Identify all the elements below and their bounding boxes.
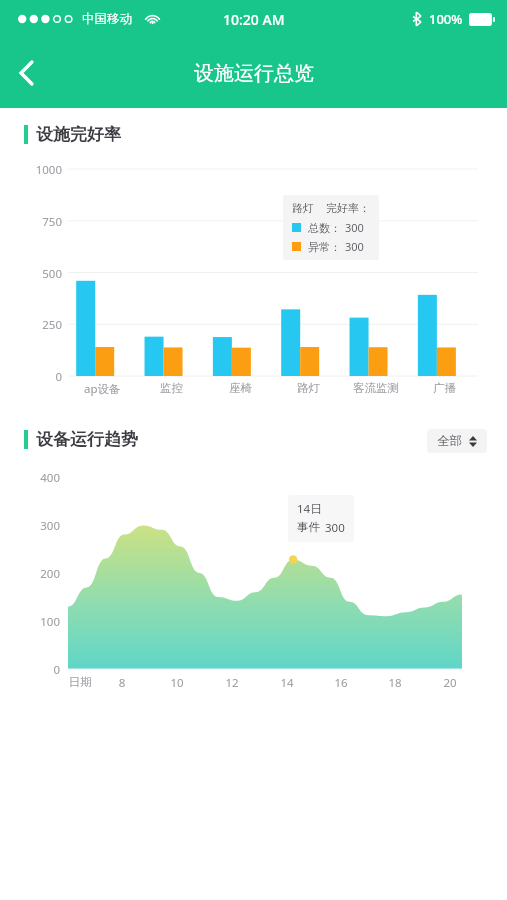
staticText: 8	[102, 675, 142, 691]
staticText: 10	[157, 675, 197, 691]
staticText: 300	[16, 518, 60, 534]
staticText: 200	[16, 566, 60, 582]
staticText: 全部	[437, 433, 462, 449]
staticText: 设施运行总览	[194, 61, 314, 86]
staticText: 设施完好率	[36, 124, 121, 145]
staticText: 总数：	[308, 221, 341, 235]
staticText: 300	[325, 520, 345, 536]
button[interactable]: Back	[0, 47, 52, 99]
staticText: 500	[18, 266, 62, 282]
staticText: 0	[16, 662, 60, 678]
staticText: 完好率：	[326, 201, 370, 215]
staticText: 300	[345, 220, 364, 235]
staticText: 18	[375, 675, 415, 691]
staticText: 300	[345, 239, 364, 254]
staticText: 路灯	[292, 201, 314, 215]
staticText: 设备运行趋势	[36, 429, 138, 450]
staticText: 100	[16, 614, 60, 630]
staticText: 客流监测	[353, 381, 399, 395]
staticText: 10:20 AM	[223, 10, 285, 29]
staticText: 1000	[18, 162, 62, 178]
staticText: 广播	[433, 381, 456, 395]
staticText: 750	[18, 214, 62, 230]
staticText: 异常：	[308, 240, 341, 254]
staticText: 日期	[60, 675, 100, 689]
staticText: ap设备	[84, 381, 121, 397]
staticText: 监控	[160, 381, 183, 395]
staticText: 12	[212, 675, 252, 691]
staticText: 路灯	[297, 381, 320, 395]
staticText: 20	[430, 675, 470, 691]
staticText: 250	[18, 317, 62, 333]
staticText: 14日	[297, 501, 322, 517]
staticText: 事件	[297, 520, 320, 534]
button[interactable]: 全部	[427, 429, 487, 453]
staticText: 400	[16, 470, 60, 486]
staticText: 100%	[429, 10, 463, 28]
staticText: 14	[267, 675, 307, 691]
staticText: 16	[321, 675, 361, 691]
staticText: 0	[18, 369, 62, 385]
staticText: 中国移动	[82, 11, 132, 27]
staticText: 座椅	[229, 381, 252, 395]
